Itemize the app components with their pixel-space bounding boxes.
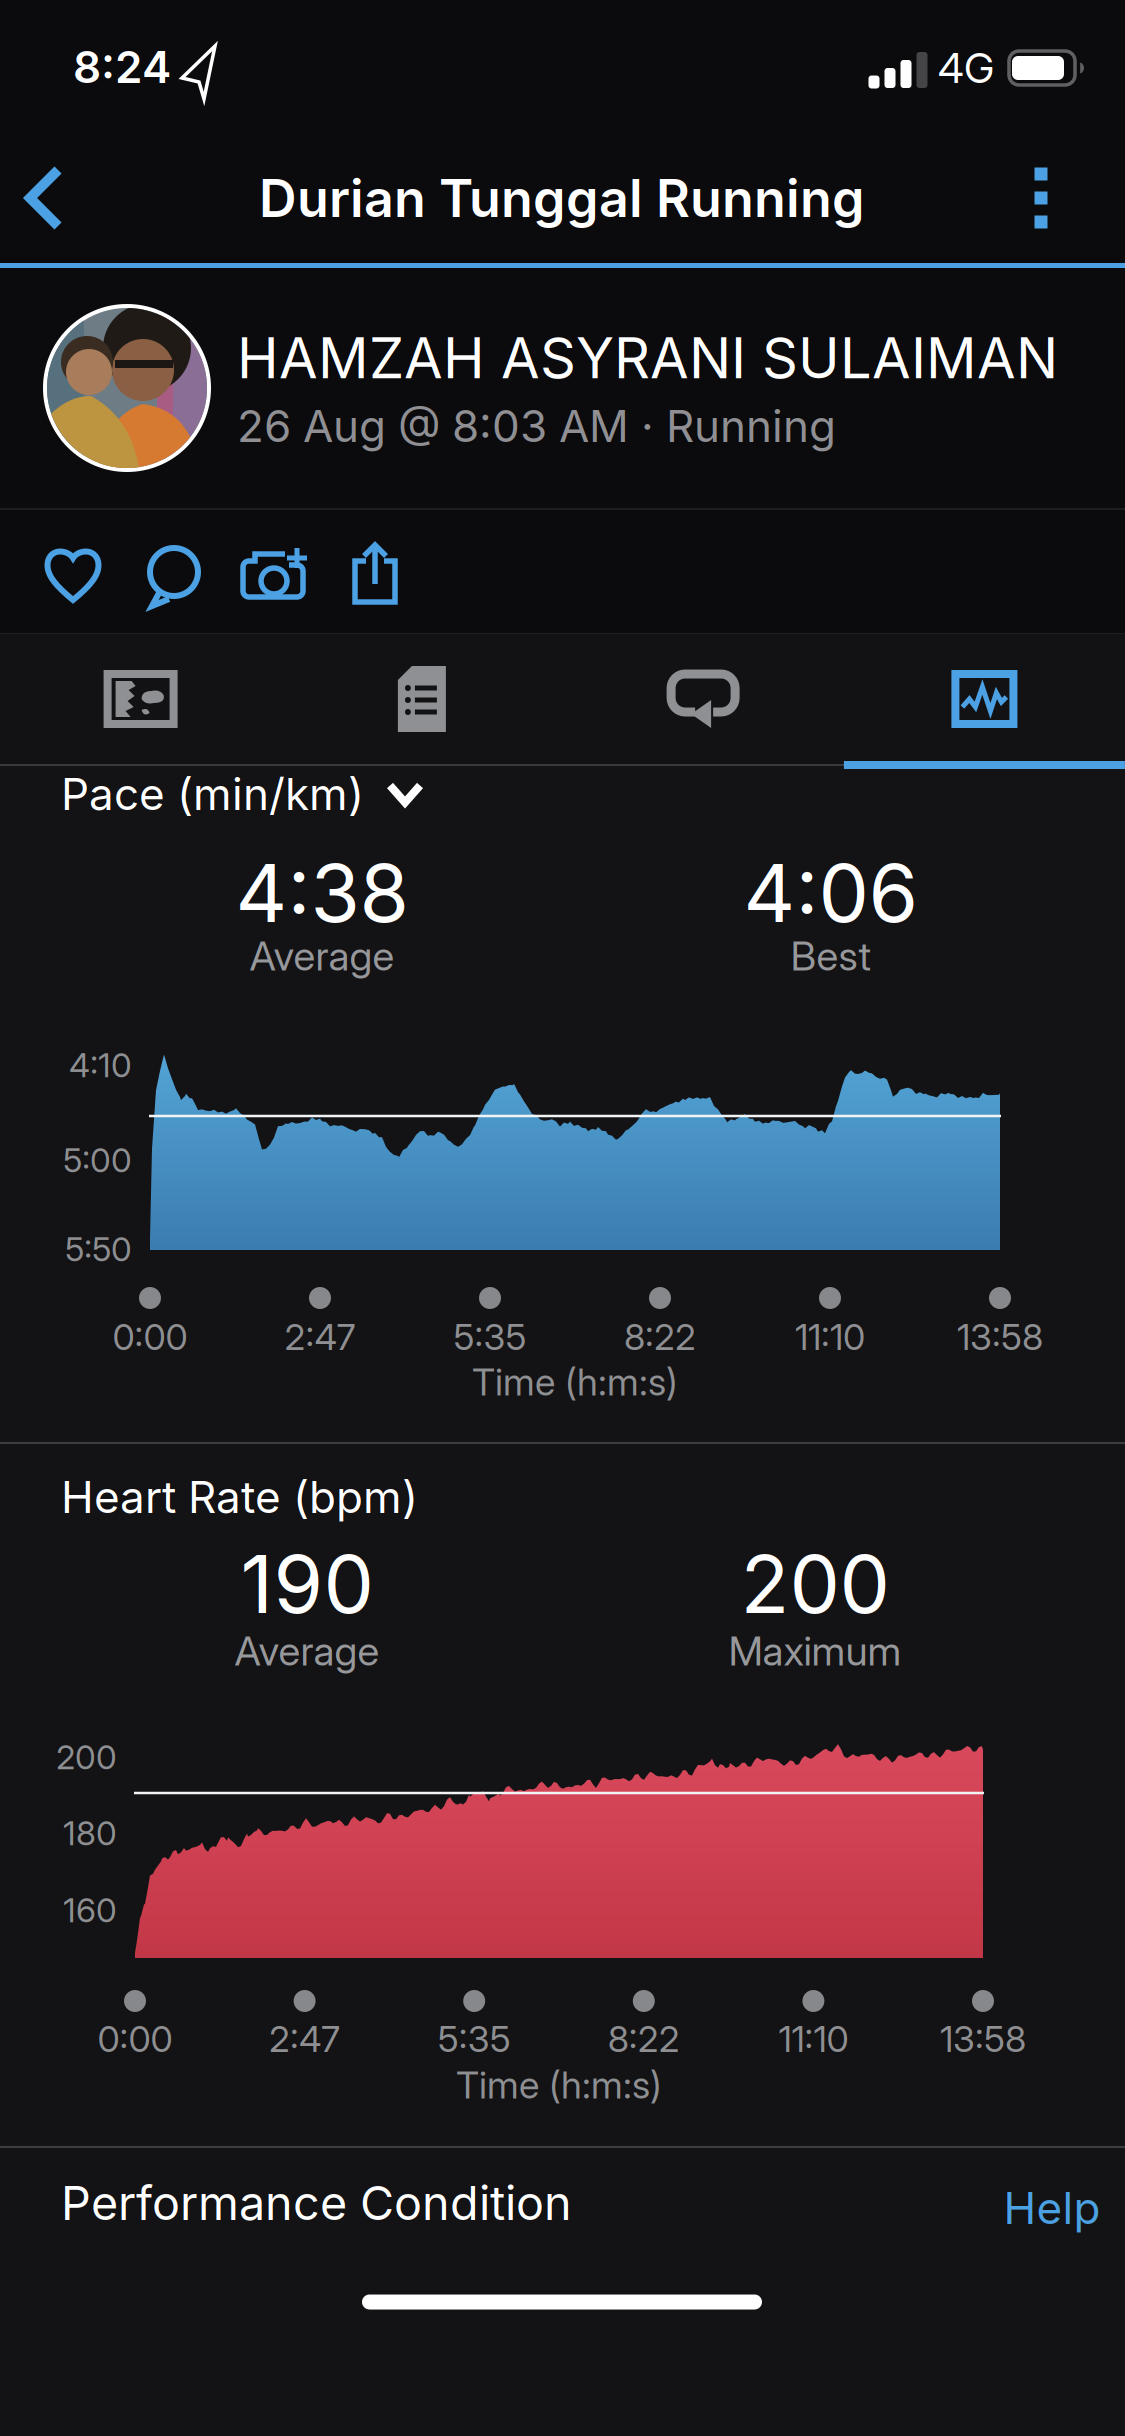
staticText: 11:10: [795, 1316, 865, 1358]
button[interactable]: Comment: [134, 536, 214, 616]
button[interactable]: Laps: [563, 639, 844, 759]
button[interactable]: Charts: [844, 639, 1125, 759]
staticText: 4:06: [743, 846, 918, 940]
staticText: 8:22: [624, 1316, 696, 1358]
staticText: 8:22: [608, 2018, 680, 2060]
staticText: HAMZAH ASYRANI SULAIMAN: [237, 325, 1058, 391]
staticText: Best: [790, 932, 871, 980]
staticText: 0:00: [97, 2018, 172, 2060]
staticText: Average: [249, 932, 394, 980]
staticText: 5:50: [65, 1229, 132, 1269]
staticText: 200: [56, 1737, 117, 1777]
staticText: 4:10: [69, 1045, 132, 1085]
button[interactable]: Map: [0, 639, 281, 759]
staticText: 5:35: [453, 1316, 526, 1358]
staticText: 200: [740, 1537, 889, 1631]
staticText: 2:47: [269, 2018, 340, 2060]
button[interactable]: Help: [1003, 2173, 1100, 2243]
staticText: Durian Tunggal Running: [259, 167, 865, 229]
staticText: 160: [63, 1890, 117, 1930]
staticText: 180: [63, 1813, 117, 1853]
staticText: Pace (min/km): [61, 768, 364, 820]
staticText: Help: [1003, 2182, 1100, 2234]
staticText: 190: [240, 1537, 373, 1631]
staticText: 26 Aug @ 8:03 AM · Running: [237, 400, 836, 452]
button[interactable]: Like: [33, 536, 113, 616]
button[interactable]: More options: [1011, 158, 1071, 238]
button[interactable]: Share: [340, 534, 410, 614]
staticText: Maximum: [728, 1627, 901, 1675]
button[interactable]: Details: [281, 639, 562, 759]
staticText: Performance Condition: [61, 2175, 572, 2231]
staticText: Time (h:m:s): [472, 1360, 678, 1404]
staticText: 4:38: [235, 846, 408, 940]
staticText: 8:24: [73, 41, 171, 93]
button[interactable]: Back: [20, 156, 76, 240]
staticText: 0:00: [112, 1316, 187, 1358]
staticText: 13:58: [940, 2018, 1026, 2060]
staticText: 13:58: [957, 1316, 1043, 1358]
staticText: 11:10: [778, 2018, 848, 2060]
button[interactable]: Add photo: [233, 536, 317, 616]
staticText: 5:00: [63, 1140, 132, 1180]
staticText: 5:35: [438, 2018, 511, 2060]
button[interactable]: Pace (min/km): [61, 761, 422, 827]
staticText: Heart Rate (bpm): [61, 1471, 418, 1523]
staticText: 2:47: [284, 1316, 355, 1358]
staticText: 4G: [938, 44, 994, 92]
staticText: Average: [234, 1627, 379, 1675]
staticText: Time (h:m:s): [456, 2063, 662, 2107]
